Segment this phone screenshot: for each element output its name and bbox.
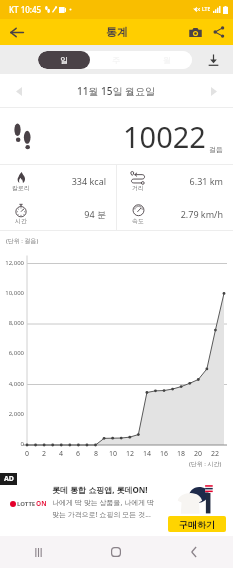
- button[interactable]: Download: [202, 49, 224, 71]
- button[interactable]: Previous day: [8, 80, 30, 102]
- button[interactable]: 구매하기: [168, 516, 226, 532]
- button[interactable]: Next day: [203, 80, 225, 102]
- staticText: ON: [36, 499, 47, 508]
- button[interactable]: Home: [77, 536, 155, 568]
- button[interactable]: 시간: [0, 197, 116, 230]
- staticText: 주: [112, 55, 120, 65]
- staticText: 맞는 가격으로! 쇼핑의 모든 것...: [52, 510, 151, 520]
- button[interactable]: 속도: [117, 197, 233, 230]
- staticText: 6.31 km: [150, 175, 223, 187]
- staticText: 10: [107, 449, 119, 459]
- staticText: 2,000: [0, 410, 24, 418]
- staticText: 속도: [132, 217, 144, 225]
- staticText: (단위 : 걸음): [6, 237, 39, 245]
- staticText: 거리: [132, 184, 144, 192]
- button[interactable]: 칼로리: [0, 165, 116, 197]
- button[interactable]: Recents: [0, 536, 77, 568]
- staticText: 11월 15일 월요일: [77, 84, 156, 98]
- staticText: 칼로리: [12, 184, 30, 192]
- staticText: 10022: [123, 117, 206, 156]
- staticText: 334 kcal: [33, 175, 106, 187]
- staticText: 통계: [106, 25, 128, 39]
- button[interactable]: Share: [207, 19, 231, 45]
- staticText: 6,000: [0, 349, 24, 357]
- staticText: 2: [38, 449, 50, 459]
- staticText: KT 10:45: [9, 4, 42, 15]
- staticText: 구매하기: [179, 519, 215, 530]
- button[interactable]: 일: [38, 51, 90, 69]
- staticText: 22: [209, 449, 221, 459]
- staticText: 월: [163, 55, 171, 65]
- staticText: 12,000: [0, 259, 24, 267]
- staticText: (단위 : 시간): [189, 460, 222, 468]
- staticText: 6: [72, 449, 84, 459]
- staticText: 14: [141, 449, 153, 459]
- staticText: 20: [192, 449, 204, 459]
- staticText: 8,000: [0, 319, 24, 327]
- staticText: 2.79 km/h: [150, 208, 223, 220]
- staticText: 12: [124, 449, 136, 459]
- staticText: 10,000: [0, 289, 24, 297]
- staticText: AD: [4, 474, 14, 484]
- staticText: 일: [60, 55, 68, 65]
- button[interactable]: Back: [0, 19, 34, 45]
- staticText: 8: [90, 449, 102, 459]
- staticText: 94 분: [33, 208, 106, 220]
- button[interactable]: AD: [0, 470, 233, 536]
- staticText: 4: [55, 449, 67, 459]
- staticText: 0: [21, 449, 33, 459]
- staticText: LTE: [202, 6, 211, 13]
- staticText: 18: [175, 449, 187, 459]
- staticText: 롯데 통합 쇼핑앱, 롯데ON!: [52, 484, 148, 495]
- button[interactable]: 거리: [117, 165, 233, 197]
- button[interactable]: 월: [141, 51, 192, 69]
- staticText: LOTTE: [17, 500, 36, 508]
- button[interactable]: Camera: [183, 19, 207, 45]
- button[interactable]: Back: [155, 536, 233, 568]
- staticText: 걸음: [209, 145, 223, 154]
- staticText: 0: [0, 440, 24, 448]
- staticText: 16: [158, 449, 170, 459]
- staticText: 나에게 딱 맞는 상품을, 나에게 딱: [52, 498, 154, 508]
- staticText: 4,000: [0, 380, 24, 388]
- staticText: 시간: [15, 217, 27, 225]
